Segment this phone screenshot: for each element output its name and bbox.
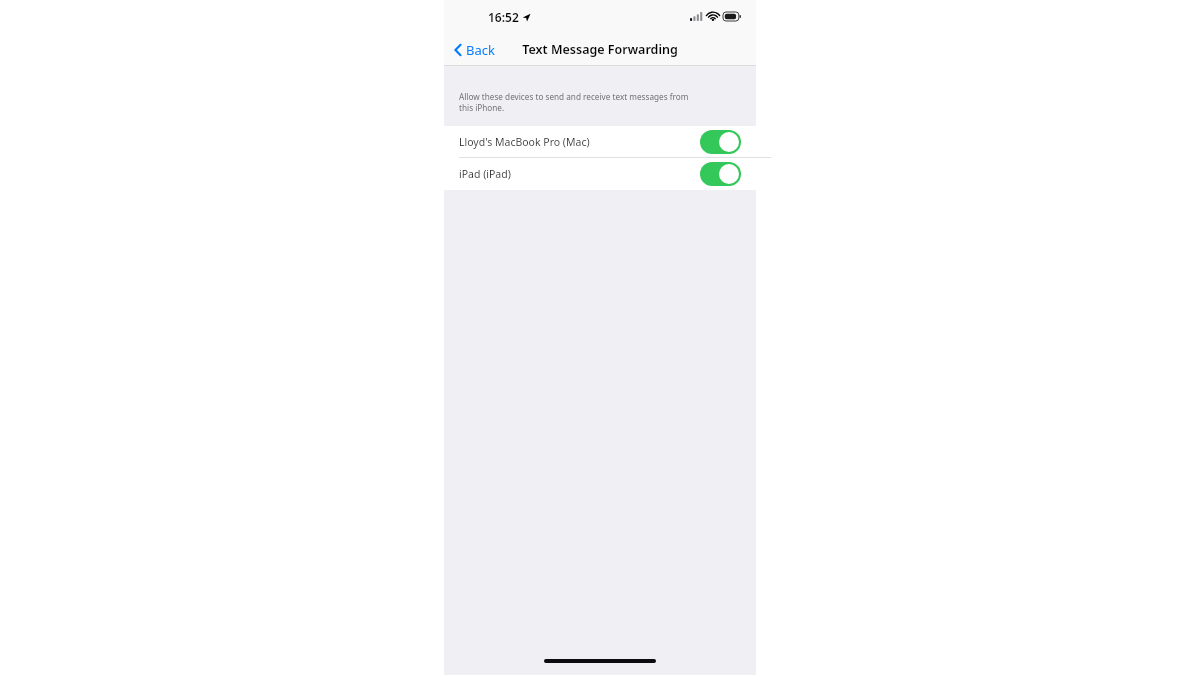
- button[interactable]: Lloyd's MacBook Pro (Mac): [444, 126, 756, 158]
- button[interactable]: Back: [450, 37, 499, 63]
- button[interactable]: Toggle device: [700, 162, 741, 186]
- staticText: Allow these devices to send and receive …: [459, 91, 689, 113]
- staticText: Text Message Forwarding: [522, 41, 678, 58]
- staticText: Lloyd's MacBook Pro (Mac): [459, 135, 590, 149]
- button[interactable]: iPad (iPad): [444, 158, 756, 190]
- staticText: Back: [466, 41, 495, 59]
- staticText: 16:52: [488, 9, 519, 25]
- button[interactable]: Toggle device: [700, 130, 741, 154]
- staticText: iPad (iPad): [459, 167, 511, 181]
